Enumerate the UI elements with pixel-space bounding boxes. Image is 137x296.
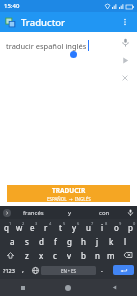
staticText: 6 (77, 221, 80, 226)
button[interactable]: francés (11, 206, 55, 219)
staticText: e (30, 222, 35, 233)
button[interactable]: j (90, 234, 104, 248)
staticText: i (101, 222, 104, 233)
staticText: y (72, 222, 77, 233)
button[interactable]: a (5, 234, 20, 248)
staticText: 15:40 (4, 2, 20, 10)
button[interactable]: Shift (0, 248, 20, 262)
staticText: c (53, 250, 57, 261)
staticText: z (25, 250, 29, 261)
staticText: ESPAÑOL → INGLÉS (47, 196, 91, 202)
button[interactable]: v (62, 248, 76, 262)
staticText: l (124, 236, 127, 247)
staticText: y (68, 209, 72, 217)
button[interactable]: u (81, 220, 95, 234)
button[interactable]: Recent apps (0, 279, 45, 296)
button[interactable]: Back (91, 279, 137, 296)
button[interactable]: Change language (29, 263, 41, 277)
staticText: j (96, 236, 99, 247)
button[interactable]: h (76, 234, 90, 248)
button[interactable]: Clear text (118, 71, 132, 84)
button[interactable]: q (0, 220, 13, 234)
button[interactable]: Listen (118, 53, 132, 67)
staticText: h (81, 236, 86, 247)
button[interactable]: o (109, 220, 123, 234)
staticText: 7 (91, 221, 94, 226)
button[interactable]: Expand suggestions (3, 209, 11, 217)
staticText: traducir español inglés (6, 41, 87, 51)
button[interactable]: g (62, 234, 76, 248)
button[interactable]: s (20, 234, 34, 248)
button[interactable]: k (104, 234, 118, 248)
button[interactable]: t (53, 220, 67, 234)
button[interactable]: Voice input (118, 35, 132, 49)
button[interactable]: x (34, 248, 48, 262)
button[interactable]: e (26, 220, 39, 234)
staticText: francés (23, 209, 44, 217)
button[interactable]: b (76, 248, 90, 262)
staticText: 4 (49, 221, 52, 226)
button[interactable]: p (123, 220, 137, 234)
staticText: , (22, 265, 24, 275)
staticText: x (39, 250, 44, 261)
staticText: d (39, 236, 44, 247)
button[interactable]: Comma (17, 263, 29, 277)
staticText: 1 (9, 221, 12, 226)
button[interactable]: Backspace (118, 248, 137, 262)
staticText: q (4, 222, 9, 233)
staticText: p (128, 222, 133, 233)
button[interactable]: i (95, 220, 109, 234)
button[interactable]: f (48, 234, 62, 248)
staticText: TRADUCIR (52, 186, 86, 195)
button[interactable]: y (67, 220, 81, 234)
button[interactable]: Enter (113, 265, 134, 275)
button[interactable]: z (20, 248, 34, 262)
button[interactable]: ?123 (0, 263, 17, 277)
button[interactable]: con (85, 206, 124, 219)
button[interactable]: m (104, 248, 118, 262)
staticText: k (109, 236, 114, 247)
button[interactable]: n (90, 248, 104, 262)
button[interactable]: d (34, 234, 48, 248)
staticText: con (99, 209, 110, 217)
button[interactable]: Period (96, 263, 108, 277)
staticText: w (16, 222, 23, 233)
staticText: 2 (22, 221, 25, 226)
staticText: 9 (119, 221, 122, 226)
staticText: 0 (133, 221, 136, 226)
staticText: ?123 (3, 267, 15, 274)
staticText: f (54, 236, 57, 247)
staticText: a (10, 236, 15, 247)
staticText: s (25, 236, 29, 247)
staticText: 5 (63, 221, 66, 226)
staticText: 8 (105, 221, 108, 226)
staticText: 3 (35, 221, 38, 226)
button[interactable]: Home (45, 279, 91, 296)
staticText: o (114, 222, 119, 233)
staticText: v (67, 250, 72, 261)
staticText: t (59, 222, 62, 233)
staticText: . (101, 265, 103, 275)
button[interactable]: TRADUCIR (7, 185, 130, 202)
button[interactable]: w (13, 220, 26, 234)
staticText: n (95, 250, 100, 261)
staticText: Traductor (21, 16, 66, 29)
button[interactable]: r (39, 220, 53, 234)
button[interactable]: EN • ES (41, 266, 96, 275)
staticText: EN • ES (61, 268, 76, 274)
button[interactable]: More options (115, 12, 135, 32)
staticText: r (44, 222, 48, 233)
staticText: m (107, 250, 115, 261)
staticText: g (67, 236, 72, 247)
button[interactable]: Voice typing (124, 206, 137, 219)
button[interactable]: c (48, 248, 62, 262)
staticText: b (81, 250, 86, 261)
button[interactable]: y (55, 206, 85, 219)
staticText: u (86, 222, 91, 233)
button[interactable]: l (118, 234, 132, 248)
